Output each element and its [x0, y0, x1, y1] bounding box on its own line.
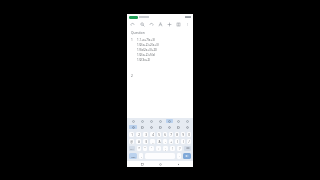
staticText: . [179, 154, 180, 158]
staticText: / [188, 140, 190, 144]
staticText: ; [165, 147, 166, 151]
button[interactable]: Back [175, 161, 181, 167]
staticText: 7 [170, 133, 172, 137]
staticText: ) [183, 140, 184, 144]
staticText: 4 [152, 133, 154, 137]
staticText: ( [177, 140, 178, 144]
button[interactable]: ) [181, 139, 185, 144]
button[interactable]: ( [175, 139, 179, 144]
button[interactable]: Text style [157, 21, 164, 28]
button[interactable]: Keyboard tool [129, 125, 137, 129]
staticText: ⌫ [186, 147, 190, 150]
button[interactable]: Redo [148, 21, 155, 28]
button[interactable]: 7 [169, 132, 173, 137]
staticText: _ [152, 140, 154, 144]
button[interactable]: & [157, 139, 161, 144]
button[interactable]: ; [163, 146, 168, 151]
staticText: * [138, 147, 140, 151]
button[interactable]: 5 [157, 132, 161, 137]
staticText: 1 [131, 38, 133, 42]
button[interactable]: Add [166, 21, 173, 28]
button[interactable]: 6 [163, 132, 167, 137]
button[interactable]: . [177, 153, 181, 159]
staticText: 0 [188, 133, 190, 137]
button[interactable]: More options [184, 21, 191, 28]
button[interactable]: ' [149, 146, 154, 151]
staticText: 1/3x(2x+3)+20 [137, 48, 157, 52]
button[interactable]: 4 [150, 132, 155, 137]
button[interactable]: @ [129, 139, 134, 144]
staticText: 1/2(x+2)+2(x+3) [137, 43, 159, 47]
button[interactable]: Toolbar item [184, 119, 191, 123]
button[interactable]: " [143, 146, 147, 151]
button[interactable]: Backspace [184, 146, 191, 151]
button[interactable]: / [187, 139, 191, 144]
staticText: 5 [158, 133, 160, 137]
button[interactable]: Toolbar item [129, 119, 137, 123]
button[interactable]: _ [150, 139, 155, 144]
staticText: # [138, 140, 140, 144]
staticText: 6 [164, 133, 166, 137]
staticText: $ [145, 140, 147, 144]
staticText: 2 [131, 74, 133, 78]
button[interactable]: 9 [181, 132, 185, 137]
staticText: " [144, 147, 146, 151]
button[interactable]: ? [177, 146, 182, 151]
button[interactable]: Keyboard tool [175, 125, 182, 129]
button[interactable]: Toolbar item [175, 119, 182, 123]
staticText: ? [179, 147, 181, 151]
button[interactable]: : [156, 146, 161, 151]
staticText: 8 [176, 133, 178, 137]
button[interactable]: 2 [136, 132, 141, 137]
staticText: ! [172, 147, 173, 151]
button[interactable]: , [139, 153, 143, 159]
staticText: 1 [131, 133, 133, 137]
staticText: 1/2(x+2)+5(x) [137, 53, 156, 57]
button[interactable]: 0 [187, 132, 191, 137]
staticText: ' [151, 147, 152, 151]
button[interactable]: Search [139, 21, 146, 28]
staticText: & [158, 140, 161, 144]
button[interactable]: Switch to letters [129, 153, 137, 159]
button[interactable]: 3 [143, 132, 148, 137]
staticText: 2 [138, 133, 140, 137]
staticText: 1/2(3x+2) [137, 58, 151, 62]
button[interactable]: Toolbar item [139, 119, 146, 123]
button[interactable]: =\< [129, 146, 135, 151]
staticText: ABC [131, 155, 136, 158]
staticText: + [170, 140, 172, 144]
button[interactable]: + [169, 139, 173, 144]
button[interactable]: ! [170, 146, 175, 151]
button[interactable]: Home [157, 161, 163, 167]
button[interactable]: Toolbar item [157, 119, 164, 123]
button[interactable]: Toolbar item [166, 119, 173, 123]
button[interactable]: 8 [175, 132, 179, 137]
staticText: 9 [182, 133, 184, 137]
staticText: , [141, 154, 142, 158]
staticText: 1.1+x+7(x+3) [137, 38, 155, 42]
button[interactable]: Keyboard tool [148, 125, 155, 129]
button[interactable]: Keyboard tool [157, 125, 164, 129]
button[interactable]: Keyboard tool [184, 125, 191, 129]
button[interactable]: $ [143, 139, 148, 144]
button[interactable]: Grid [175, 21, 182, 28]
button[interactable]: 1 [129, 132, 134, 137]
staticText: Question [131, 31, 145, 35]
staticText: =\< [130, 147, 134, 150]
button[interactable]: Keyboard tool [166, 125, 173, 129]
button[interactable]: Keyboard tool [139, 125, 146, 129]
button[interactable]: Undo [129, 21, 136, 28]
button[interactable]: Recents [139, 161, 145, 167]
staticText: 3 [145, 133, 147, 137]
staticText: - [165, 140, 166, 144]
staticText: @ [130, 140, 133, 144]
button[interactable]: Toolbar item [148, 119, 155, 123]
button[interactable]: Enter [183, 153, 191, 159]
button[interactable]: # [136, 139, 141, 144]
staticText: : [158, 147, 159, 151]
button[interactable]: - [163, 139, 167, 144]
button[interactable]: * [137, 146, 141, 151]
